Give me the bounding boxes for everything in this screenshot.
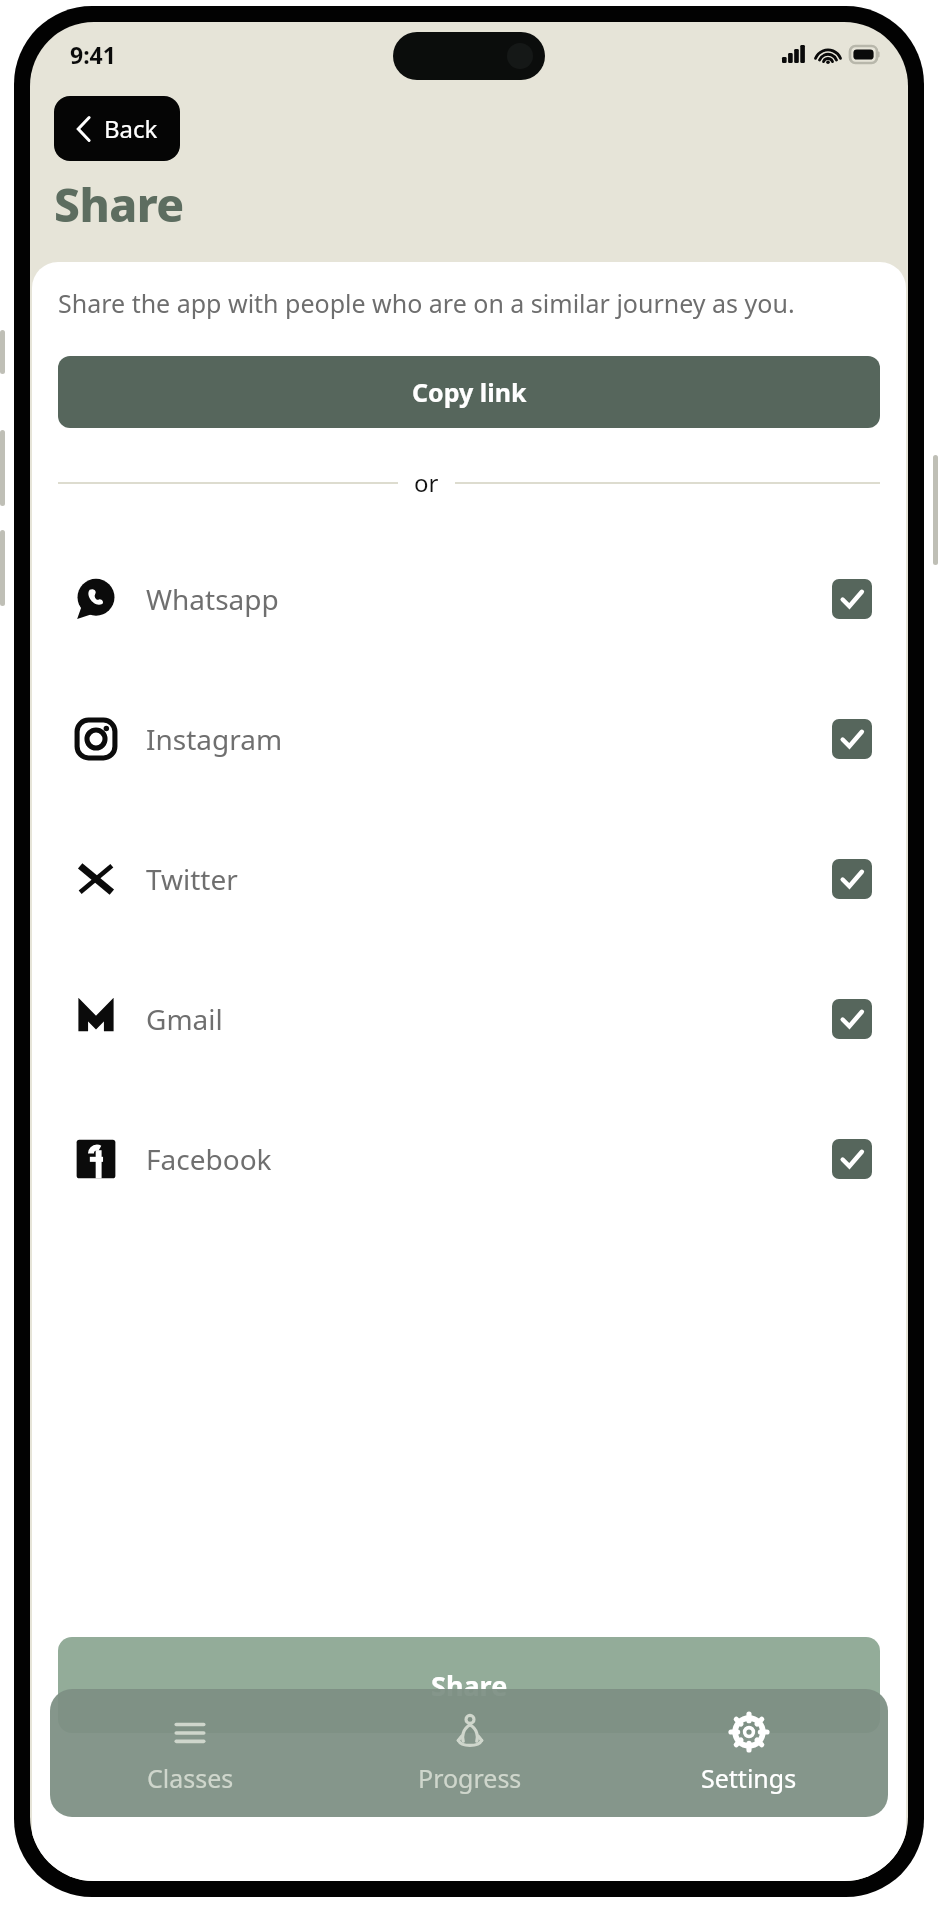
staticText: Share the app with people who are on a s… [58, 286, 795, 320]
button[interactable]: Toggle Gmail [832, 999, 872, 1039]
button[interactable]: Back [54, 96, 180, 161]
button[interactable]: Gmail [58, 949, 880, 1089]
staticText: Facebook [146, 1140, 272, 1178]
button[interactable]: Toggle Facebook [832, 1139, 872, 1179]
button[interactable]: Copy link [58, 356, 880, 428]
staticText: Instagram [146, 720, 283, 758]
staticText: Settings [701, 1761, 797, 1795]
button[interactable]: Classes [50, 1689, 330, 1817]
staticText: Back [104, 112, 158, 145]
staticText: Classes [147, 1761, 234, 1795]
button[interactable]: Toggle Whatsapp [832, 579, 872, 619]
button[interactable]: Toggle Twitter [832, 859, 872, 899]
staticText: Twitter [146, 860, 238, 898]
button[interactable]: Whatsapp [58, 529, 880, 669]
button[interactable]: Instagram [58, 669, 880, 809]
staticText: Progress [418, 1761, 522, 1795]
staticText: or [414, 466, 439, 499]
staticText: Whatsapp [146, 580, 279, 618]
button[interactable]: Twitter [58, 809, 880, 949]
staticText: Copy link [412, 375, 527, 409]
button[interactable]: Facebook [58, 1089, 880, 1229]
button[interactable]: Settings [609, 1689, 888, 1817]
button[interactable]: Toggle Instagram [832, 719, 872, 759]
staticText: Gmail [146, 1000, 223, 1038]
staticText: 9:41 [70, 39, 116, 70]
button[interactable]: Share [58, 1637, 880, 1733]
staticText: Share [54, 173, 184, 236]
staticText: Share [431, 1667, 508, 1704]
button[interactable]: Progress [330, 1689, 609, 1817]
